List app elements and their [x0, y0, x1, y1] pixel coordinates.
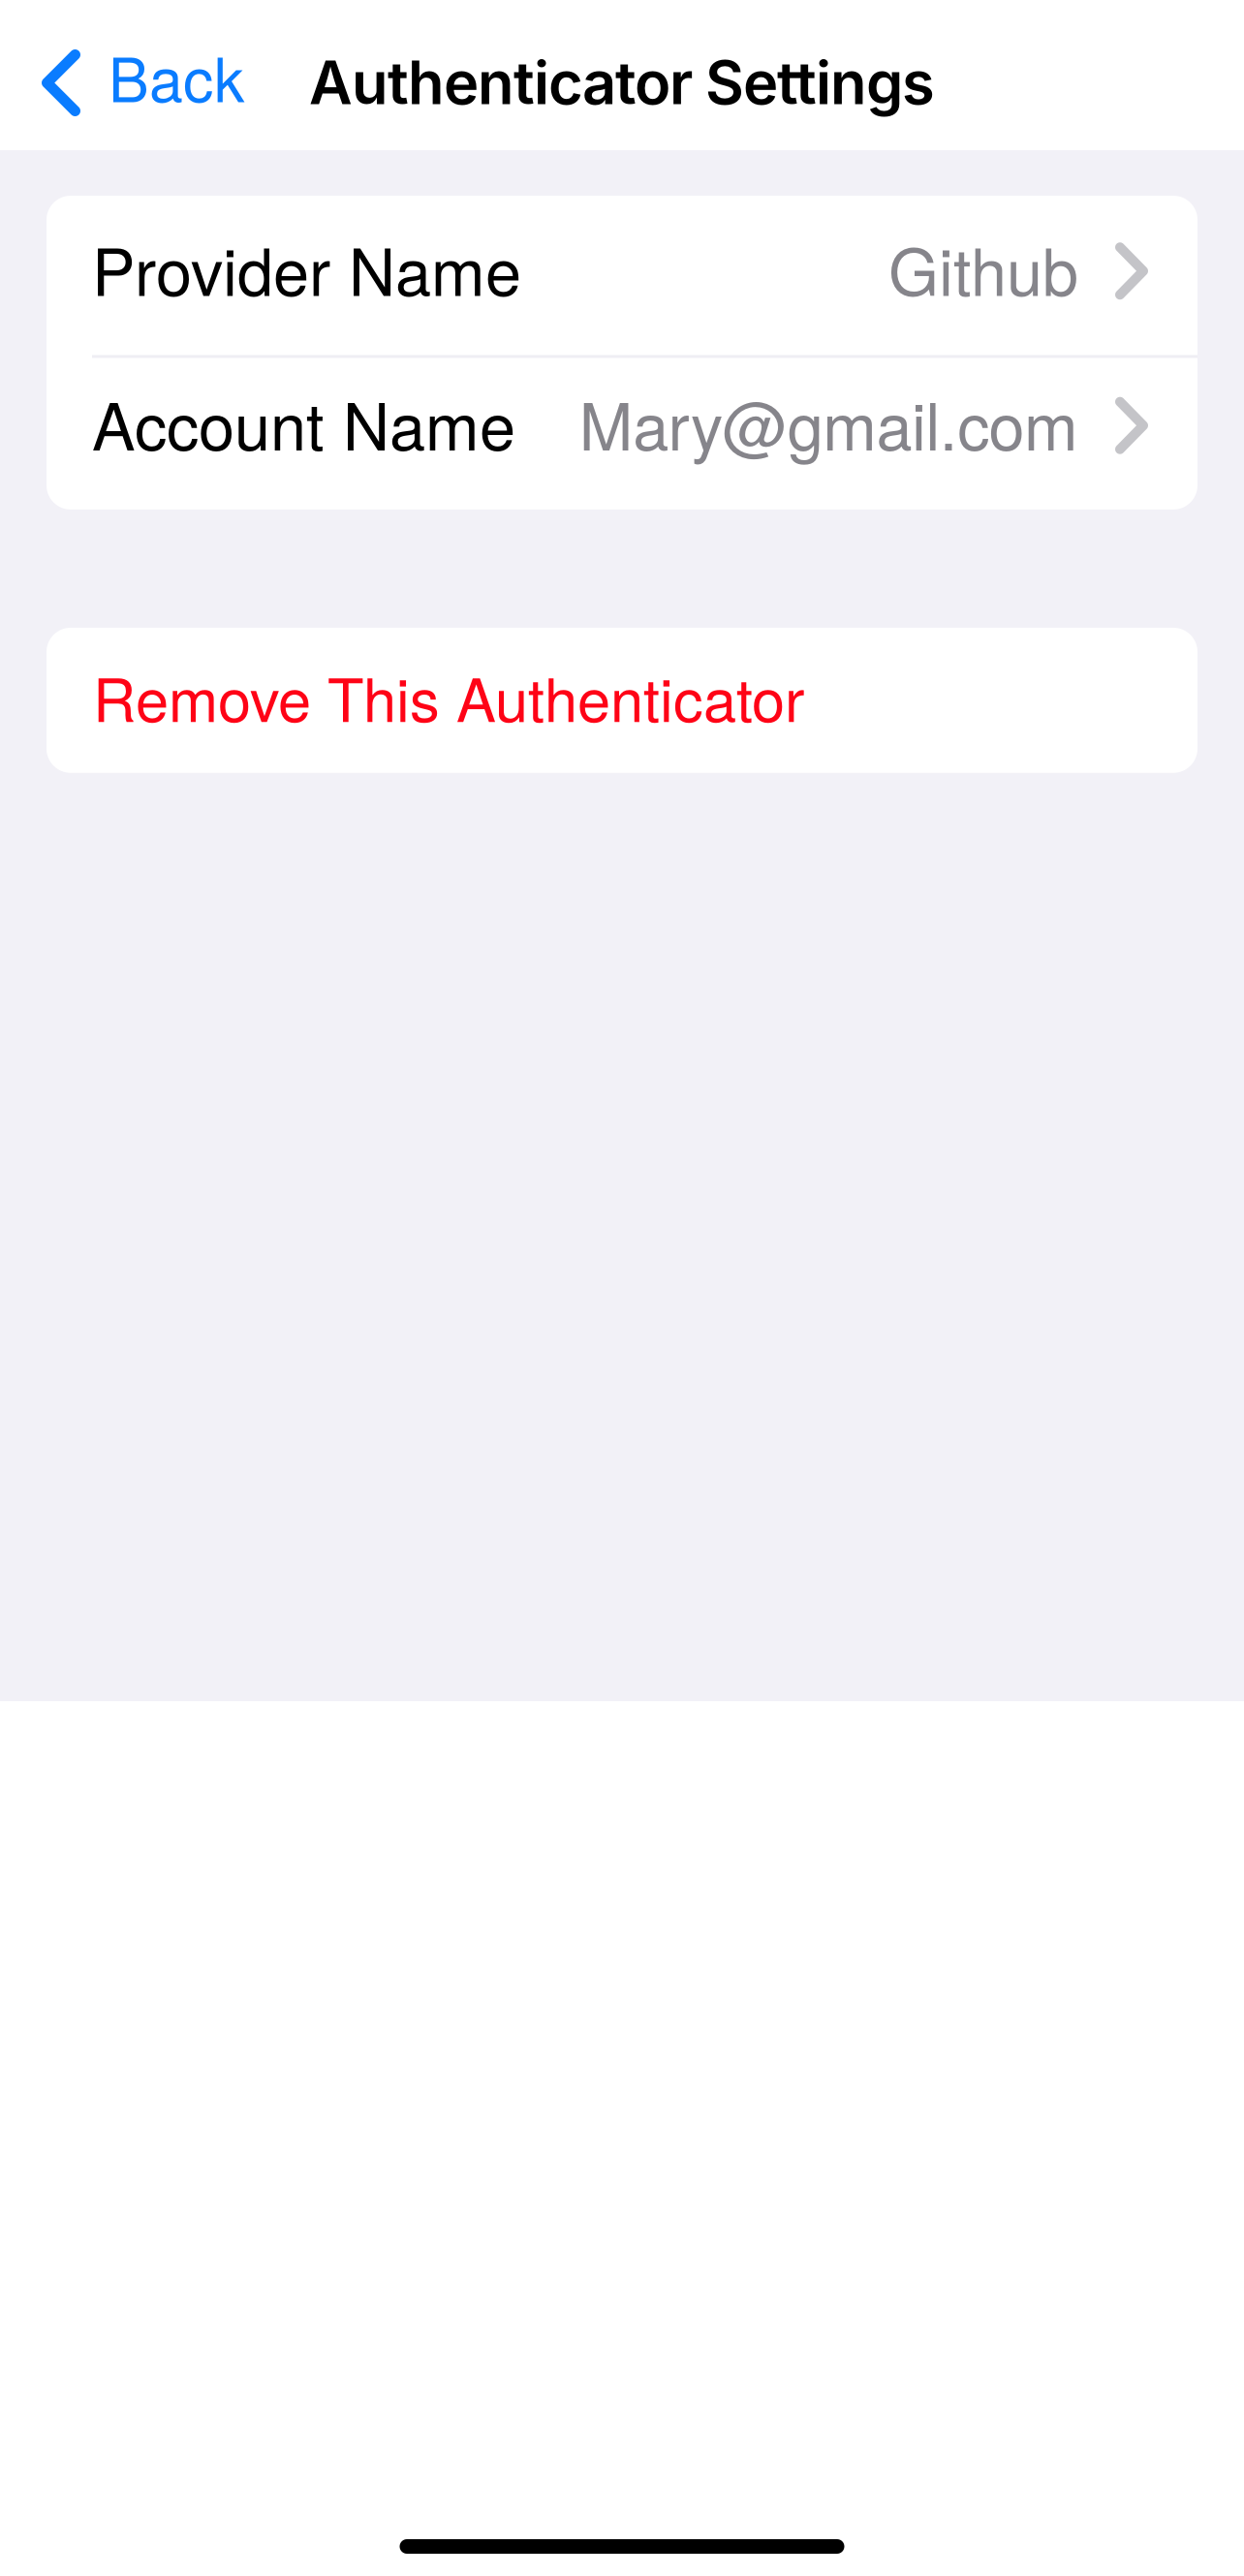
staticText: Provider Name [92, 222, 521, 314]
button[interactable]: Back [0, 0, 269, 150]
button[interactable]: Remove This Authenticator [47, 628, 1197, 773]
button[interactable]: Account Name [47, 358, 1197, 510]
staticText: Mary@gmail.com [579, 376, 1078, 469]
staticText: Authenticator Settings [309, 47, 935, 118]
staticText: Github [888, 222, 1078, 314]
staticText: Back [109, 33, 244, 119]
staticText: Account Name [92, 376, 515, 469]
staticText: Remove This Authenticator [93, 654, 804, 739]
button[interactable]: Provider Name [47, 196, 1197, 355]
